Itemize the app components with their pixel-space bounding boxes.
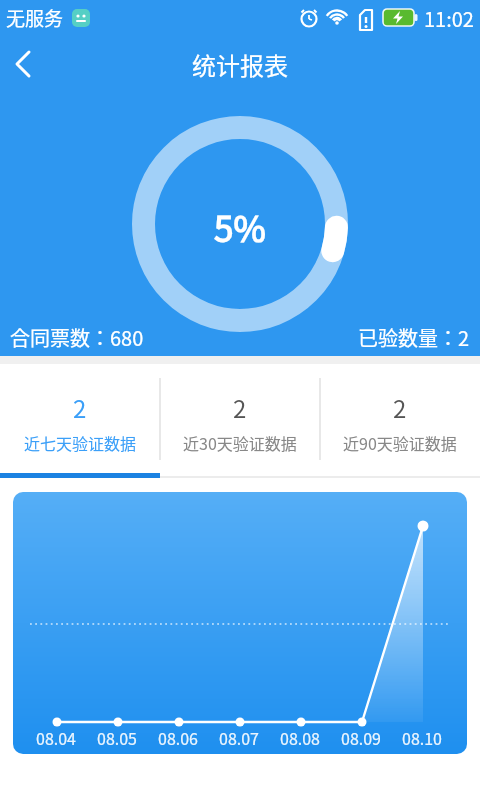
button[interactable] (0, 40, 48, 88)
staticText: 近90天验证数据 (343, 431, 457, 454)
button[interactable]: 08.04 (13, 492, 467, 754)
staticText: 已验数量：2 (358, 323, 470, 352)
staticText: 08.10 (402, 726, 442, 749)
staticText: 合同票数：680 (10, 323, 144, 352)
staticText: 11:02 (424, 4, 474, 33)
staticText: 近七天验证数据 (24, 431, 137, 454)
button[interactable]: 2 (320, 364, 480, 478)
staticText: 2 (73, 390, 87, 425)
staticText: 2 (393, 390, 407, 425)
staticText: 08.09 (341, 726, 381, 749)
staticText: 2 (233, 390, 247, 425)
button[interactable]: 2 (0, 364, 160, 478)
staticText: 08.05 (97, 726, 137, 749)
button[interactable]: 2 (160, 364, 320, 478)
staticText: 统计报表 (192, 47, 288, 82)
staticText: 近30天验证数据 (183, 431, 297, 454)
staticText: 无服务 (6, 4, 64, 32)
staticText: 5% (214, 201, 266, 252)
staticText: 08.08 (280, 726, 320, 749)
staticText: 08.04 (36, 726, 76, 749)
staticText: 08.07 (219, 726, 259, 749)
staticText: 08.06 (158, 726, 198, 749)
